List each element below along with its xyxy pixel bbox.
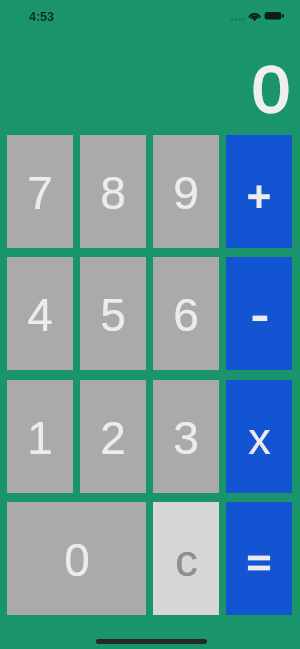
staticText: 0 <box>253 53 292 126</box>
staticText: 7 <box>27 167 53 218</box>
staticText: c <box>175 535 198 585</box>
button[interactable]: 0 <box>7 502 146 615</box>
staticText: 0 <box>251 53 290 126</box>
button[interactable]: 6 <box>153 257 219 370</box>
staticText: 0 <box>252 54 291 127</box>
button[interactable]: Plus <box>226 135 292 248</box>
staticText: 8 <box>100 167 126 218</box>
staticText: 0 <box>252 53 291 126</box>
button[interactable]: 2 <box>80 380 146 493</box>
staticText: 9 <box>173 167 199 218</box>
button[interactable]: 1 <box>7 380 73 493</box>
button[interactable]: 4 <box>7 257 73 370</box>
button[interactable]: c <box>153 502 219 615</box>
staticText: x <box>248 413 271 463</box>
staticText: 0 <box>64 534 90 585</box>
button[interactable]: Equals <box>226 502 292 615</box>
button[interactable]: 8 <box>80 135 146 248</box>
button[interactable]: 7 <box>7 135 73 248</box>
staticText: 1 <box>27 412 53 463</box>
staticText: c <box>175 535 198 585</box>
button[interactable]: 9 <box>153 135 219 248</box>
button[interactable]: 5 <box>80 257 146 370</box>
staticText: 4 <box>27 289 53 340</box>
staticText: 4:53 <box>29 10 55 24</box>
staticText: 0 <box>252 52 291 125</box>
button[interactable]: Multiply <box>226 380 292 493</box>
button[interactable]: 3 <box>153 380 219 493</box>
staticText: 6 <box>173 289 199 340</box>
staticText: 3 <box>173 412 199 463</box>
button[interactable]: Minus <box>226 257 292 370</box>
staticText: 5 <box>100 289 126 340</box>
staticText: 2 <box>100 412 126 463</box>
